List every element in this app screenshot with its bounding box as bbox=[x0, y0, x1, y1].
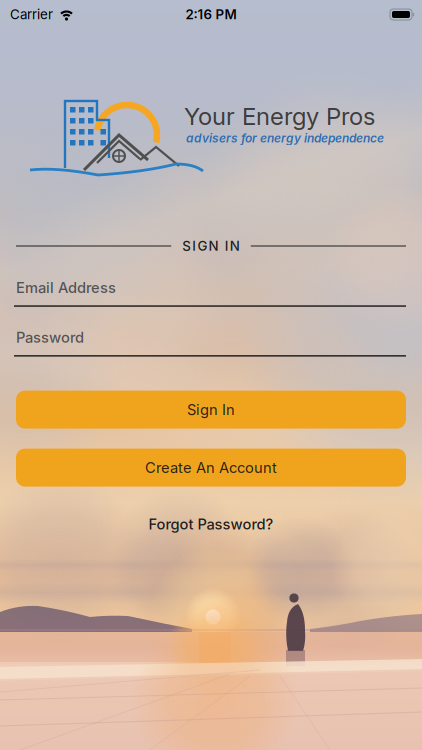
button[interactable]: Forgot Password? bbox=[148, 516, 273, 533]
staticText: Forgot Password? bbox=[148, 516, 273, 533]
staticText: 2:16 PM bbox=[185, 7, 236, 22]
button[interactable]: Sign In bbox=[16, 391, 406, 429]
staticText: Password bbox=[16, 329, 84, 346]
staticText: Your Energy Pros bbox=[184, 102, 375, 130]
button[interactable]: Email Address bbox=[0, 279, 422, 307]
button[interactable]: Create An Account bbox=[16, 449, 406, 487]
staticText: Sign In bbox=[187, 401, 235, 418]
button[interactable]: Password bbox=[0, 329, 422, 357]
staticText: SIGN IN bbox=[182, 238, 240, 254]
staticText: advisers for energy independence bbox=[186, 131, 384, 145]
staticText: Create An Account bbox=[145, 459, 277, 476]
staticText: Carrier bbox=[10, 7, 53, 22]
staticText: Email Address bbox=[16, 279, 116, 296]
